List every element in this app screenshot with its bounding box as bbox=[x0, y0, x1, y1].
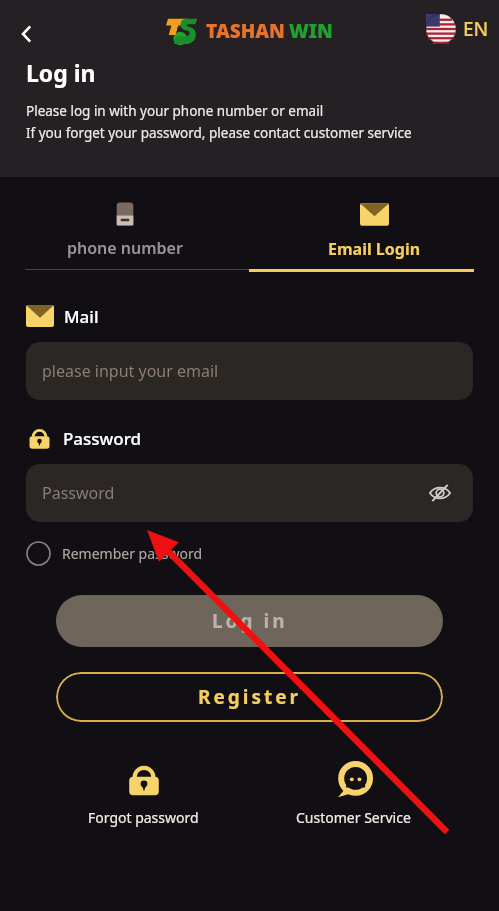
staticText: Remember password bbox=[62, 544, 203, 563]
staticText: Customer Service bbox=[296, 808, 411, 827]
button[interactable]: Forgot password bbox=[80, 752, 207, 835]
staticText: please input your email bbox=[42, 360, 219, 382]
button[interactable]: EN bbox=[426, 14, 489, 44]
button[interactable]: Register bbox=[56, 672, 443, 722]
staticText: Log in bbox=[26, 57, 96, 88]
staticText: Forgot password bbox=[88, 808, 199, 827]
button[interactable]: Show password bbox=[423, 476, 457, 510]
staticText: Password bbox=[42, 482, 115, 504]
staticText: Register bbox=[198, 684, 302, 710]
staticText: WIN bbox=[289, 18, 333, 44]
button[interactable]: Remember password bbox=[24, 537, 205, 570]
staticText: Please log in with your phone number or … bbox=[26, 102, 324, 120]
button[interactable]: Back bbox=[6, 13, 48, 55]
button[interactable]: Password bbox=[26, 464, 473, 522]
button[interactable]: phone number bbox=[0, 191, 249, 269]
staticText: If you forget your password, please cont… bbox=[26, 124, 412, 142]
staticText: Log in bbox=[212, 608, 288, 634]
button[interactable]: Customer Service bbox=[288, 752, 419, 835]
staticText: EN bbox=[463, 16, 489, 42]
button[interactable]: Log in bbox=[56, 595, 443, 647]
staticText: phone number bbox=[67, 237, 183, 259]
staticText: Mail bbox=[64, 305, 99, 328]
staticText: Password bbox=[63, 427, 142, 450]
button[interactable]: please input your email bbox=[26, 342, 473, 400]
staticText: TASHAN bbox=[206, 18, 285, 44]
staticText: Email Login bbox=[328, 238, 421, 260]
button[interactable]: Email Login bbox=[249, 191, 499, 269]
